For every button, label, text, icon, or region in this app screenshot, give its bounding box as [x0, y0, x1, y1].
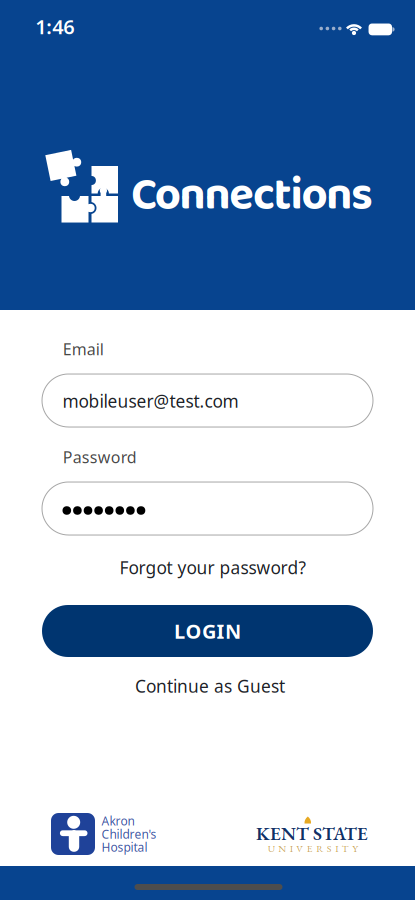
staticText: Connections	[131, 160, 373, 232]
staticText: Email	[63, 338, 104, 360]
staticText: LOGIN	[174, 618, 241, 644]
staticText: Forgot your password?	[119, 556, 306, 579]
button[interactable]: Forgot your password?	[119, 556, 306, 579]
button[interactable]: LOGIN	[42, 605, 373, 657]
staticText: Hospital	[101, 839, 147, 855]
staticText: KENT STATE	[256, 821, 368, 846]
staticText: UNIVERSITY	[268, 842, 358, 855]
staticText: Password	[63, 446, 137, 468]
staticText: Children's	[101, 826, 156, 842]
button[interactable]: Email	[42, 374, 373, 427]
staticText: mobileuser@test.com	[62, 389, 238, 412]
staticText: Continue as Guest	[135, 674, 285, 697]
staticText: Akron	[101, 813, 134, 829]
staticText: 1:46	[35, 13, 74, 40]
button[interactable]: Password	[42, 482, 373, 535]
button[interactable]: Continue as Guest	[135, 674, 285, 697]
